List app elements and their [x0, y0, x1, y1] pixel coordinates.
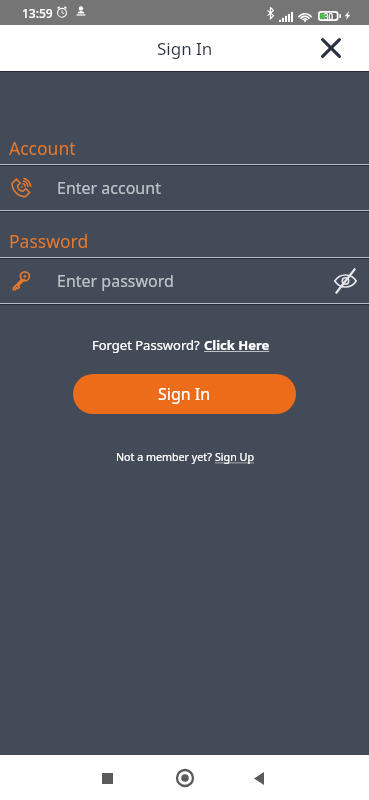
button[interactable]: Enter account [0, 166, 369, 210]
button[interactable]: Enter password [0, 259, 369, 303]
staticText: 30 [324, 11, 334, 21]
button[interactable]: Recents [90, 761, 124, 795]
button[interactable]: Click Here [204, 336, 270, 354]
button[interactable]: Close [314, 31, 348, 65]
button[interactable]: Sign In [73, 374, 296, 414]
staticText: Sign In [157, 37, 213, 60]
button[interactable]: Sign Up [215, 450, 254, 465]
staticText: Enter password [57, 270, 174, 292]
button[interactable]: Home [168, 761, 202, 795]
button[interactable]: Toggle password visibility [325, 261, 365, 301]
staticText: Sign In [158, 383, 211, 405]
staticText: Account [9, 136, 76, 160]
staticText: Sign Up [215, 450, 254, 465]
staticText: Password [9, 229, 89, 253]
staticText: Enter account [57, 177, 161, 199]
staticText: Not a member yet? [116, 450, 215, 465]
staticText: Forget Password? [92, 336, 204, 354]
staticText: Click Here [204, 336, 270, 354]
staticText: 13:59 [22, 5, 53, 21]
button[interactable]: Back [242, 761, 276, 795]
